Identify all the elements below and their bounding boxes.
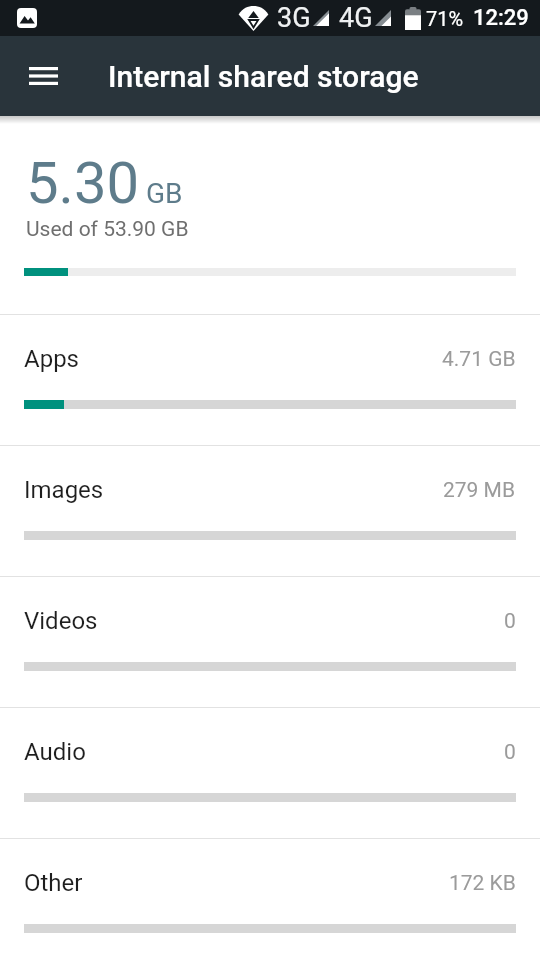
staticText: 172 KB	[449, 871, 516, 896]
staticText: Apps	[24, 345, 79, 373]
staticText: Internal shared storage	[108, 59, 419, 94]
staticText: 4.71 GB	[442, 347, 516, 372]
button[interactable]	[20, 53, 66, 99]
staticText: 12:29	[473, 5, 529, 31]
button[interactable]: Images	[0, 446, 540, 576]
staticText: 0	[504, 609, 516, 634]
staticText: 5.30	[26, 149, 140, 217]
staticText: Other	[24, 869, 83, 897]
button[interactable]: Videos	[0, 577, 540, 707]
staticText: Audio	[24, 738, 86, 766]
staticText: GB	[146, 177, 183, 210]
staticText: 3G	[277, 2, 311, 34]
staticText: 0	[504, 740, 516, 765]
staticText: 4G	[339, 2, 373, 34]
staticText: 71%	[426, 7, 464, 30]
button[interactable]: Audio	[0, 708, 540, 838]
staticText: Images	[24, 476, 104, 504]
staticText: 279 MB	[443, 478, 516, 503]
button[interactable]: Apps	[0, 315, 540, 445]
staticText: Videos	[24, 607, 98, 635]
button[interactable]: Other	[0, 839, 540, 960]
staticText: Used of 53.90 GB	[26, 217, 189, 242]
